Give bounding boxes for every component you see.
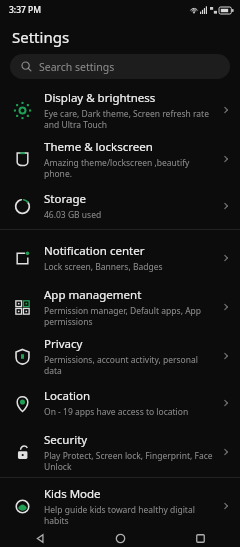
staticText: Notification center	[44, 243, 145, 259]
button[interactable]: Location	[0, 379, 240, 426]
other: Open Storage	[221, 201, 231, 211]
staticText: 3:37 PM	[9, 4, 42, 16]
other: Open Display & brightness	[221, 105, 231, 115]
staticText: Play Protect, Screen lock, Fingerprint, …	[44, 450, 215, 472]
staticText: Search settings	[39, 60, 115, 74]
button[interactable]: App management	[0, 281, 240, 332]
other: Open Location	[221, 398, 231, 408]
other: Open App management	[221, 302, 231, 312]
button[interactable]: Back	[0, 529, 80, 547]
staticText: 46.03 GB used	[44, 209, 102, 221]
other: Open Theme & lockscreen	[221, 154, 231, 164]
button[interactable]: Recents	[160, 529, 240, 547]
other: Open Notification center	[221, 253, 231, 263]
staticText: Security	[44, 432, 88, 448]
staticText: Settings	[12, 27, 70, 47]
button[interactable]: Home	[80, 529, 160, 547]
staticText: Location	[44, 388, 91, 404]
staticText: Permission manager, Default apps, App pe…	[44, 305, 215, 327]
staticText: Theme & lockscreen	[44, 139, 153, 155]
button[interactable]: Security	[0, 426, 240, 477]
button[interactable]: Storage	[0, 182, 240, 229]
other: Open Privacy	[221, 351, 231, 361]
button[interactable]: Search settings	[10, 54, 230, 79]
button[interactable]: Privacy	[0, 332, 240, 379]
staticText: On - 19 apps have access to location	[44, 406, 189, 418]
button[interactable]: Kids Mode	[0, 482, 240, 529]
other: Open Kids Mode	[221, 501, 231, 511]
staticText: Eye care, Dark theme, Screen refresh rat…	[44, 108, 215, 130]
staticText: Display & brightness	[44, 90, 156, 106]
staticText: Kids Mode	[44, 486, 101, 502]
staticText: Amazing theme/lockscreen ,beautify phone…	[44, 157, 215, 179]
staticText: Help guide kids toward healthy digital h…	[44, 504, 215, 526]
button[interactable]: Theme & lockscreen	[0, 135, 240, 182]
staticText: App management	[44, 287, 142, 303]
other: Open Security	[221, 447, 231, 457]
staticText: Privacy	[44, 336, 83, 352]
staticText: Permissions, account activity, personal …	[44, 354, 215, 376]
button[interactable]: Notification center	[0, 234, 240, 281]
staticText: Lock screen, Banners, Badges	[44, 261, 163, 273]
staticText: Storage	[44, 191, 86, 207]
button[interactable]: Display & brightness	[0, 84, 240, 135]
